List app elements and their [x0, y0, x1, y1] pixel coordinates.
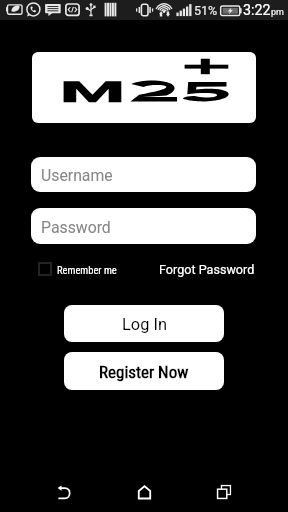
button[interactable]: Register Now — [64, 352, 224, 390]
staticText: Log In — [122, 315, 167, 334]
button[interactable]: Remember me — [38, 262, 118, 276]
button[interactable]: Home — [120, 468, 168, 512]
button[interactable]: Forgot Password — [159, 262, 255, 277]
staticText: Password — [41, 218, 111, 237]
staticText: Remember me — [57, 264, 117, 276]
staticText: 51% — [194, 3, 218, 18]
button[interactable]: Password — [31, 208, 256, 244]
button[interactable]: Log In — [64, 305, 224, 342]
staticText: Register Now — [99, 362, 189, 382]
staticText: 3:22 — [243, 2, 271, 19]
button[interactable]: Back — [40, 468, 88, 512]
button[interactable]: Username — [31, 157, 256, 192]
staticText: Username — [41, 166, 113, 185]
button[interactable]: Recent apps — [200, 468, 248, 512]
staticText: pm — [271, 7, 284, 18]
